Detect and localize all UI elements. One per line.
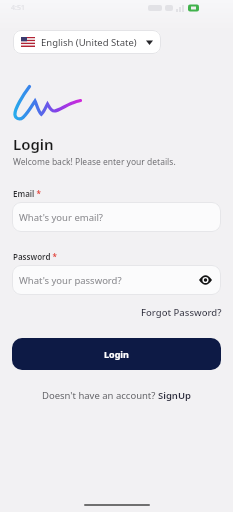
staticText: Password * <box>13 251 57 262</box>
staticText: English (United State) <box>41 36 137 49</box>
button[interactable]: Login <box>12 338 221 370</box>
button[interactable]: SignUp <box>158 389 191 402</box>
staticText: Welcome back! Please enter your details. <box>13 156 176 168</box>
staticText: What's your email? <box>19 211 103 224</box>
button[interactable]: English (United State) <box>13 30 161 54</box>
staticText: What's your password? <box>19 274 122 287</box>
button[interactable]: Forgot Password? <box>141 306 222 319</box>
button[interactable]: What's your password? <box>12 265 221 295</box>
staticText: 4:51 <box>11 3 25 13</box>
staticText: Login <box>13 134 54 154</box>
button[interactable]: What's your email? <box>12 202 221 232</box>
staticText: Doesn't have an account? <box>42 389 158 402</box>
staticText: Login <box>104 348 129 360</box>
staticText: Email * <box>13 188 41 199</box>
